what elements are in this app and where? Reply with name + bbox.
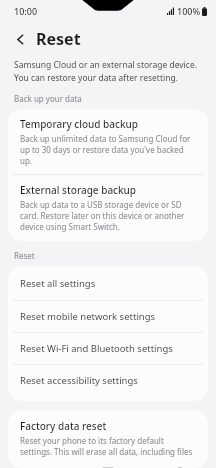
button[interactable]: Reset accessibility settings: [8, 365, 208, 396]
button[interactable]: Temporary cloud backup: [8, 109, 208, 174]
staticText: Factory data reset: [20, 419, 107, 433]
staticText: Back up data to a USB storage device or …: [20, 199, 196, 232]
staticText: External storage backup: [20, 183, 137, 197]
staticText: Reset Wi-Fi and Bluetooth settings: [20, 342, 173, 355]
staticText: Samsung Cloud or an external storage dev…: [14, 59, 202, 84]
staticText: Back up your data: [14, 93, 82, 104]
button[interactable]: Back: [9, 28, 31, 50]
staticText: 10:00: [14, 5, 38, 17]
button[interactable]: External storage backup: [8, 175, 208, 241]
staticText: Reset mobile network settings: [20, 310, 156, 323]
button[interactable]: Factory data reset: [8, 410, 208, 468]
staticText: Reset: [36, 28, 81, 50]
staticText: Reset your phone to its factory default …: [20, 435, 196, 457]
button[interactable]: Reset mobile network settings: [8, 301, 208, 332]
staticText: Reset: [14, 250, 35, 261]
staticText: Reset accessibility settings: [20, 374, 138, 387]
staticText: 100%: [177, 5, 201, 17]
button[interactable]: Reset Wi-Fi and Bluetooth settings: [8, 333, 208, 364]
staticText: Reset all settings: [20, 277, 96, 290]
staticText: Back up unlimited data to Samsung Cloud …: [20, 133, 196, 166]
staticText: Temporary cloud backup: [20, 117, 138, 131]
button[interactable]: Reset all settings: [8, 266, 208, 300]
